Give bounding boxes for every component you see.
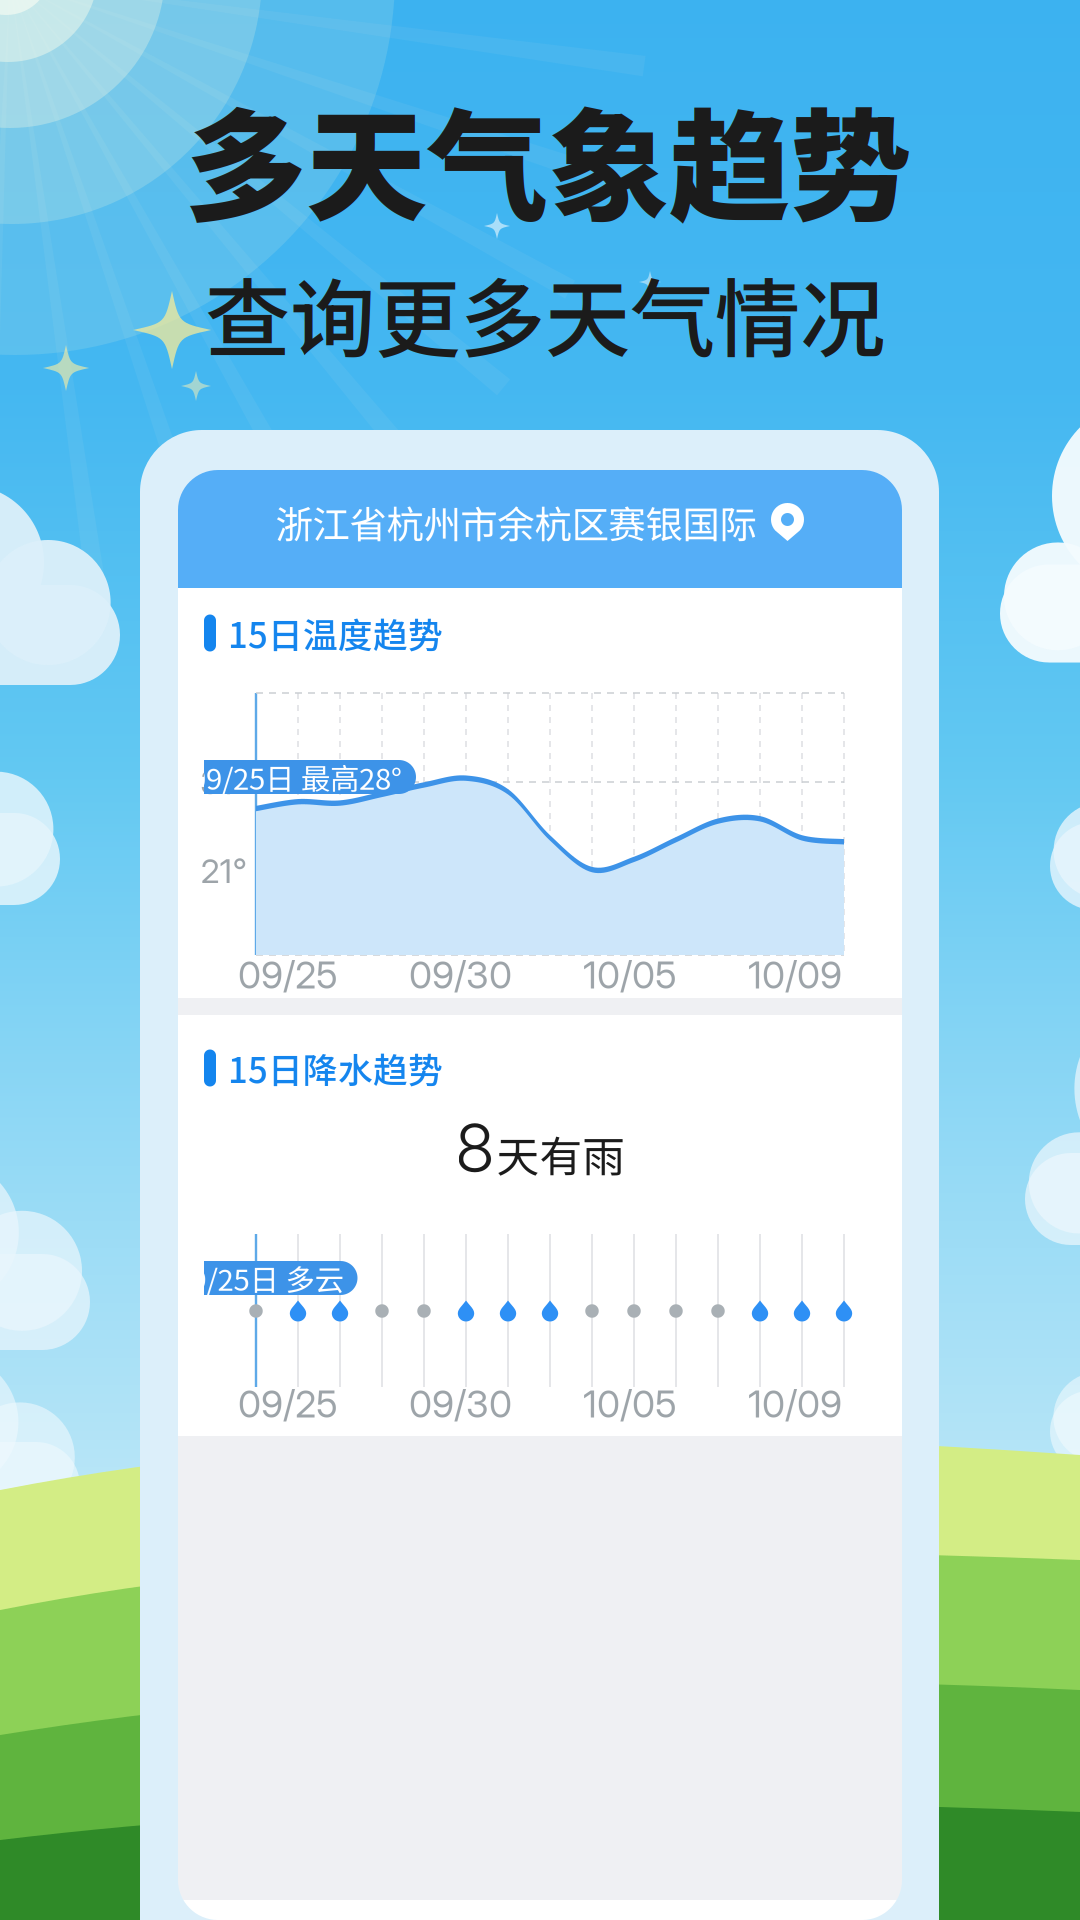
staticText: 09/25日 最高28° [190, 756, 402, 798]
staticText: 查询更多天气情况 [205, 251, 885, 375]
staticText: 浙江省杭州市余杭区赛银国际 [275, 495, 756, 549]
staticText: 10/09 [748, 1381, 842, 1427]
staticText: 10/05 [583, 952, 677, 998]
button[interactable]: 浙江省杭州市余杭区赛银国际 [263, 487, 816, 557]
staticText: 10/09 [748, 952, 842, 998]
staticText: 09/25 [238, 1381, 338, 1427]
staticText: 31° [200, 762, 248, 802]
staticText: 09/25日 多云 [174, 1257, 343, 1299]
staticText: 8 [454, 1108, 495, 1188]
staticText: 09/30 [409, 952, 512, 998]
staticText: 09/25 [238, 952, 338, 998]
staticText: 21° [200, 851, 247, 891]
staticText: 09/30 [409, 1381, 512, 1427]
staticText: 15日温度趋势 [228, 608, 443, 658]
staticText: 15日降水趋势 [228, 1043, 443, 1093]
staticText: 多天气象趋势 [185, 70, 911, 246]
staticText: 10/05 [583, 1381, 677, 1427]
staticText: 天有雨 [496, 1123, 625, 1185]
